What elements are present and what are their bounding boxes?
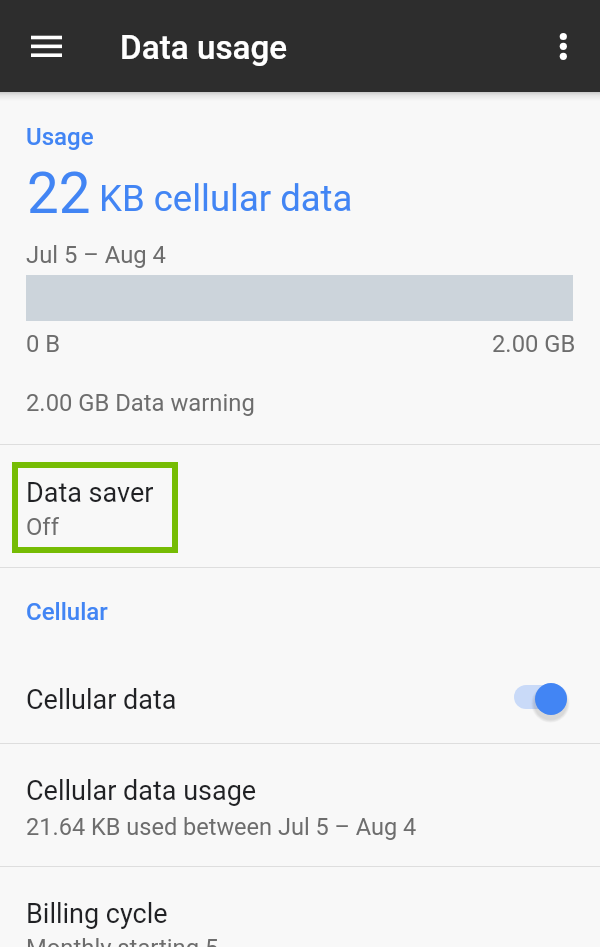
button[interactable]: Cellular data	[0, 637, 600, 743]
staticText: 22	[27, 161, 91, 227]
button[interactable]: Billing cycle	[0, 867, 600, 947]
button[interactable]: Open navigation drawer	[15, 22, 77, 70]
staticText: 2.00 GB	[492, 330, 576, 358]
staticText: 21.64 KB used between Jul 5 – Aug 4	[26, 813, 417, 841]
button[interactable]: Usage	[0, 98, 600, 444]
button[interactable]: Data saver	[0, 445, 600, 567]
staticText: Billing cycle	[26, 898, 168, 930]
staticText: 0 B	[26, 330, 61, 358]
staticText: KB cellular data	[99, 177, 353, 220]
staticText: Off	[26, 513, 59, 541]
staticText: Cellular data usage	[26, 775, 257, 807]
staticText: 2.00 GB Data warning	[26, 389, 255, 417]
button[interactable]: More options	[539, 22, 587, 70]
staticText: Usage	[26, 123, 94, 151]
staticText: Data usage	[120, 28, 288, 67]
staticText: Monthly starting 5	[26, 934, 219, 947]
staticText: Cellular	[26, 598, 108, 626]
staticText: Data saver	[26, 477, 154, 509]
staticText: Cellular data	[26, 684, 177, 716]
staticText: Jul 5 – Aug 4	[26, 241, 166, 269]
button[interactable]: Cellular data usage	[0, 744, 600, 866]
